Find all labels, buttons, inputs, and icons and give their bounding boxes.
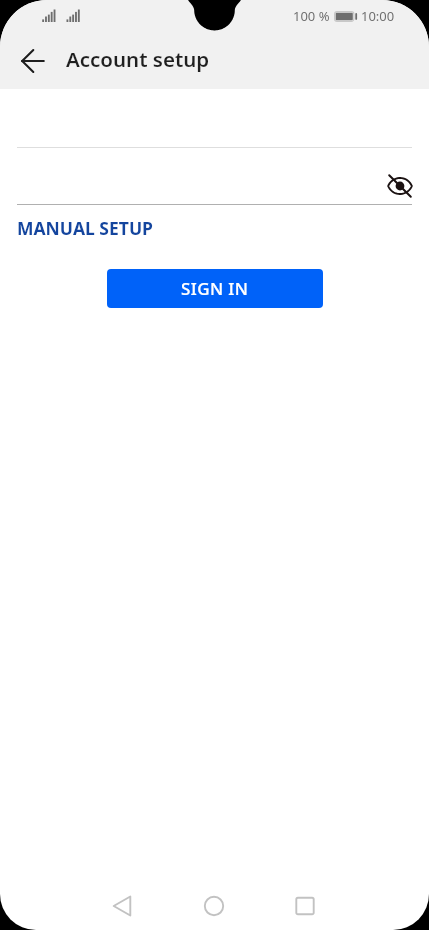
staticText: 100 % [293, 7, 330, 25]
button[interactable]: Show password [384, 170, 416, 202]
staticText: MANUAL SETUP [17, 216, 153, 240]
staticText: SIGN IN [181, 277, 249, 300]
button[interactable]: MANUAL SETUP [17, 216, 153, 240]
staticText: Account setup [66, 45, 210, 73]
button[interactable]: Recent apps [281, 882, 329, 930]
button[interactable]: Back [98, 882, 146, 930]
staticText: 10:00 [361, 7, 395, 25]
button[interactable]: Home [190, 882, 238, 930]
button[interactable]: SIGN IN [107, 269, 323, 308]
button[interactable]: Back [13, 41, 53, 81]
